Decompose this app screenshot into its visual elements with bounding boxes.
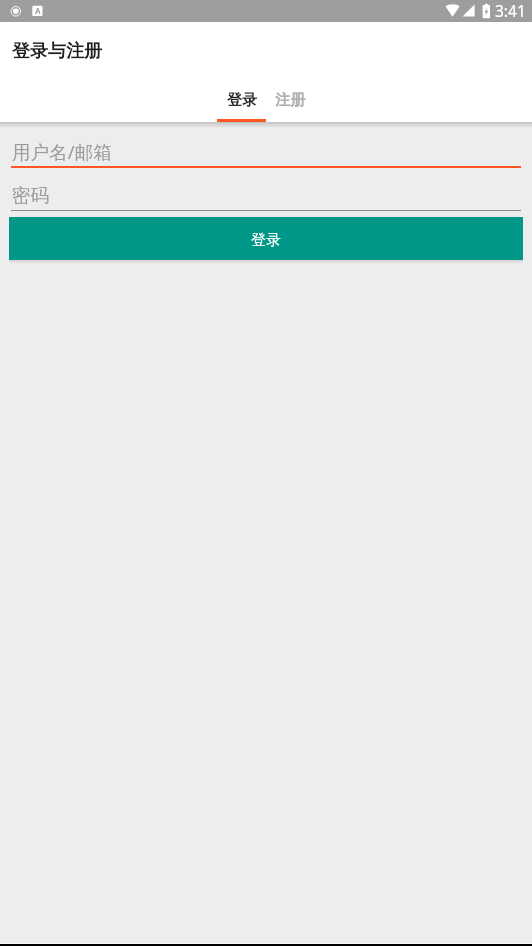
button[interactable]: 登录 (217, 83, 266, 122)
staticText: A (35, 5, 41, 16)
staticText: 3:41 (495, 0, 526, 21)
button[interactable]: 登录 (9, 217, 523, 260)
button[interactable]: 注册 (266, 83, 313, 122)
button[interactable]: 密码 (0, 176, 532, 211)
staticText: 登录与注册 (12, 40, 102, 63)
other: Status icons (0, 0, 532, 22)
staticText: 密码 (12, 184, 50, 207)
button[interactable]: 用户名/邮箱 (0, 131, 532, 168)
staticText: 用户名/邮箱 (12, 139, 112, 164)
staticText: 登录 (227, 91, 257, 110)
staticText: 登录 (251, 231, 281, 250)
staticText: 注册 (275, 91, 305, 110)
